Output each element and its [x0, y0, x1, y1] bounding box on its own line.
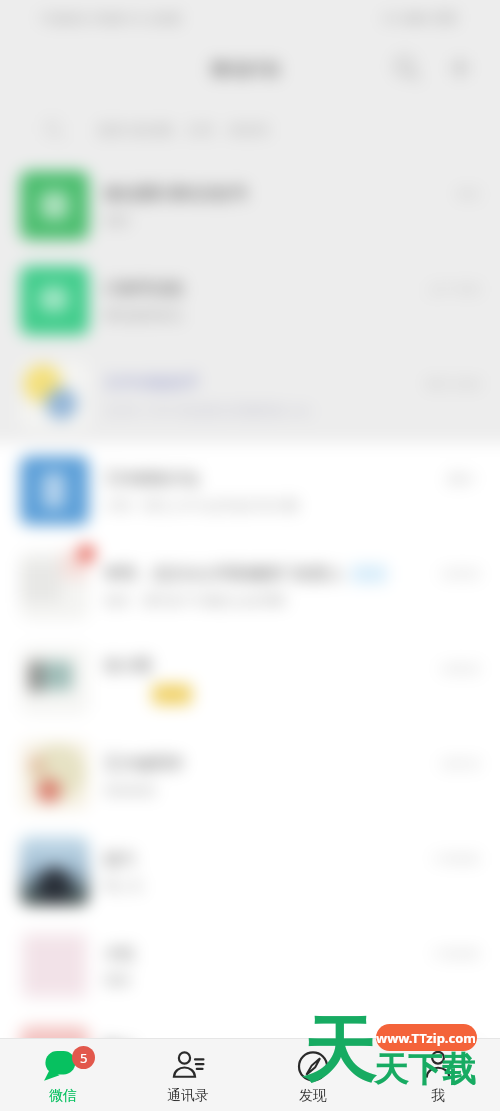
button[interactable]: 赵六: [0, 823, 500, 918]
button[interactable]: 通讯录: [125, 1046, 250, 1105]
staticText: 小红: [104, 944, 136, 964]
staticText: 微信(12): [211, 56, 279, 81]
staticText: 工作群组讨论: [104, 469, 200, 489]
staticText: www.TTzip.com: [376, 1029, 477, 1047]
button[interactable]: 我: [375, 1046, 500, 1105]
button[interactable]: 5: [0, 1046, 125, 1105]
staticText: 天: [303, 1006, 375, 1097]
button[interactable]: 李明，北京分公司客服部门负责人: [0, 538, 500, 633]
staticText: 赵六: [104, 849, 136, 869]
staticText: 微信团队测试消息号: [104, 184, 248, 204]
staticText: 订阅号消息: [104, 279, 184, 299]
staticText: 王大锤同学: [104, 754, 184, 774]
staticText: 天下载: [374, 1048, 476, 1091]
button[interactable]: 王大锤同学: [0, 728, 500, 823]
staticText: 11月28日: [432, 1041, 480, 1056]
staticText: 微信: [49, 1087, 77, 1105]
staticText: 文件传输助手: [104, 373, 200, 393]
button[interactable]: 工作群组讨论: [0, 443, 500, 538]
button[interactable]: 文件传输助手: [0, 348, 500, 443]
staticText: 李明，北京分公司客服部门负责人: [104, 564, 344, 584]
button[interactable]: 微信团队测试消息号: [0, 158, 500, 253]
button[interactable]: Search: [388, 50, 424, 86]
button[interactable]: Add: [442, 50, 478, 86]
staticText: 通讯录: [167, 1087, 209, 1105]
button[interactable]: 小红: [0, 918, 500, 1013]
staticText: 5: [80, 1049, 88, 1067]
staticText: 张小雨: [104, 656, 152, 676]
button[interactable]: 陈七: [0, 1013, 500, 1108]
button[interactable]: 张小雨: [0, 633, 500, 728]
staticText: 我: [431, 1087, 445, 1105]
staticText: 发现: [299, 1087, 327, 1105]
button[interactable]: 发现: [250, 1046, 375, 1105]
button[interactable]: 订阅号消息: [0, 253, 500, 348]
